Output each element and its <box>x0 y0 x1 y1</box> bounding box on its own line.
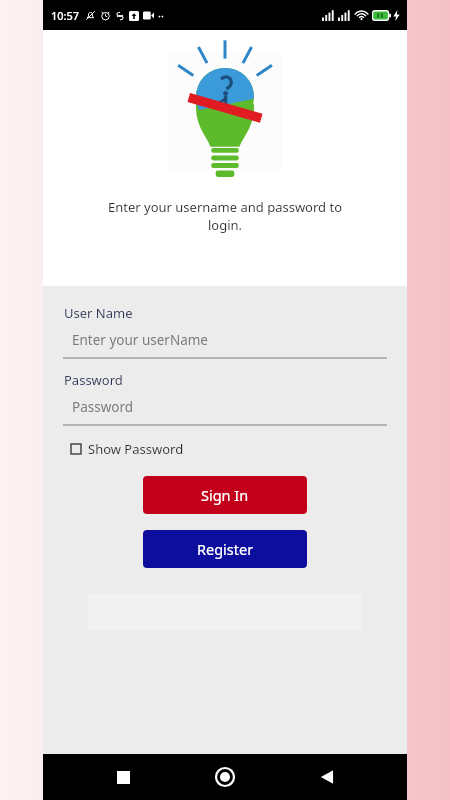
staticText: Password <box>72 398 134 416</box>
staticText: Password <box>64 371 123 389</box>
button[interactable]: Recent apps <box>101 755 145 799</box>
button[interactable]: Back <box>305 755 349 799</box>
staticText: Enter your userName <box>72 331 208 349</box>
button[interactable]: Enter your userName <box>43 331 407 349</box>
staticText: Sign In <box>201 485 249 505</box>
staticText: 10:57 <box>51 8 80 23</box>
staticText: Show Password <box>88 440 184 458</box>
button[interactable]: Show Password <box>71 440 184 458</box>
button[interactable]: Sign In <box>143 476 307 514</box>
button[interactable]: Register <box>143 530 307 568</box>
button[interactable]: Password <box>43 398 407 416</box>
staticText: Register <box>197 539 254 559</box>
staticText: ·· <box>158 8 164 23</box>
button[interactable]: Home <box>203 755 247 799</box>
staticText: Enter your username and password to logi… <box>43 198 407 234</box>
staticText: User Name <box>64 304 133 322</box>
